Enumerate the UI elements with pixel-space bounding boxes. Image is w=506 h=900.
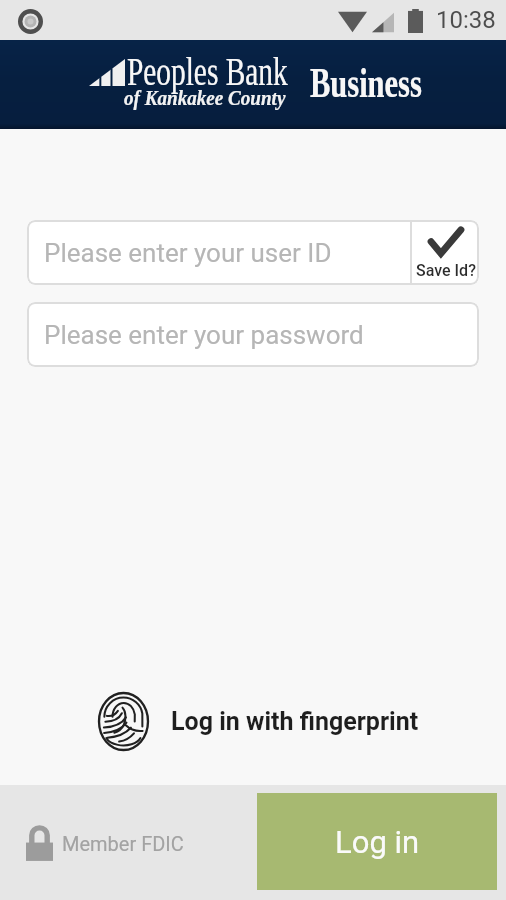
button[interactable]: Please enter your password — [27, 302, 479, 367]
button[interactable]: Save Id — [412, 220, 479, 285]
staticText: Member FDIC — [62, 832, 184, 855]
staticText: Peoples Bank — [127, 48, 288, 93]
staticText: Please enter your user ID — [44, 238, 332, 268]
button[interactable]: Log in — [257, 793, 497, 890]
staticText: of Kankakee County — [124, 86, 286, 109]
staticText: Log in with fingerprint — [171, 707, 419, 736]
button[interactable]: Member FDIC — [26, 826, 184, 862]
staticText: Please enter your password — [44, 320, 364, 350]
button[interactable]: Log in with fingerprint — [0, 668, 506, 774]
button[interactable]: Please enter your user ID — [27, 220, 410, 285]
staticText: Save Id? — [416, 261, 476, 280]
staticText: Log in — [335, 824, 420, 860]
staticText: Business — [310, 59, 422, 107]
staticText: 10:38 — [436, 6, 496, 34]
